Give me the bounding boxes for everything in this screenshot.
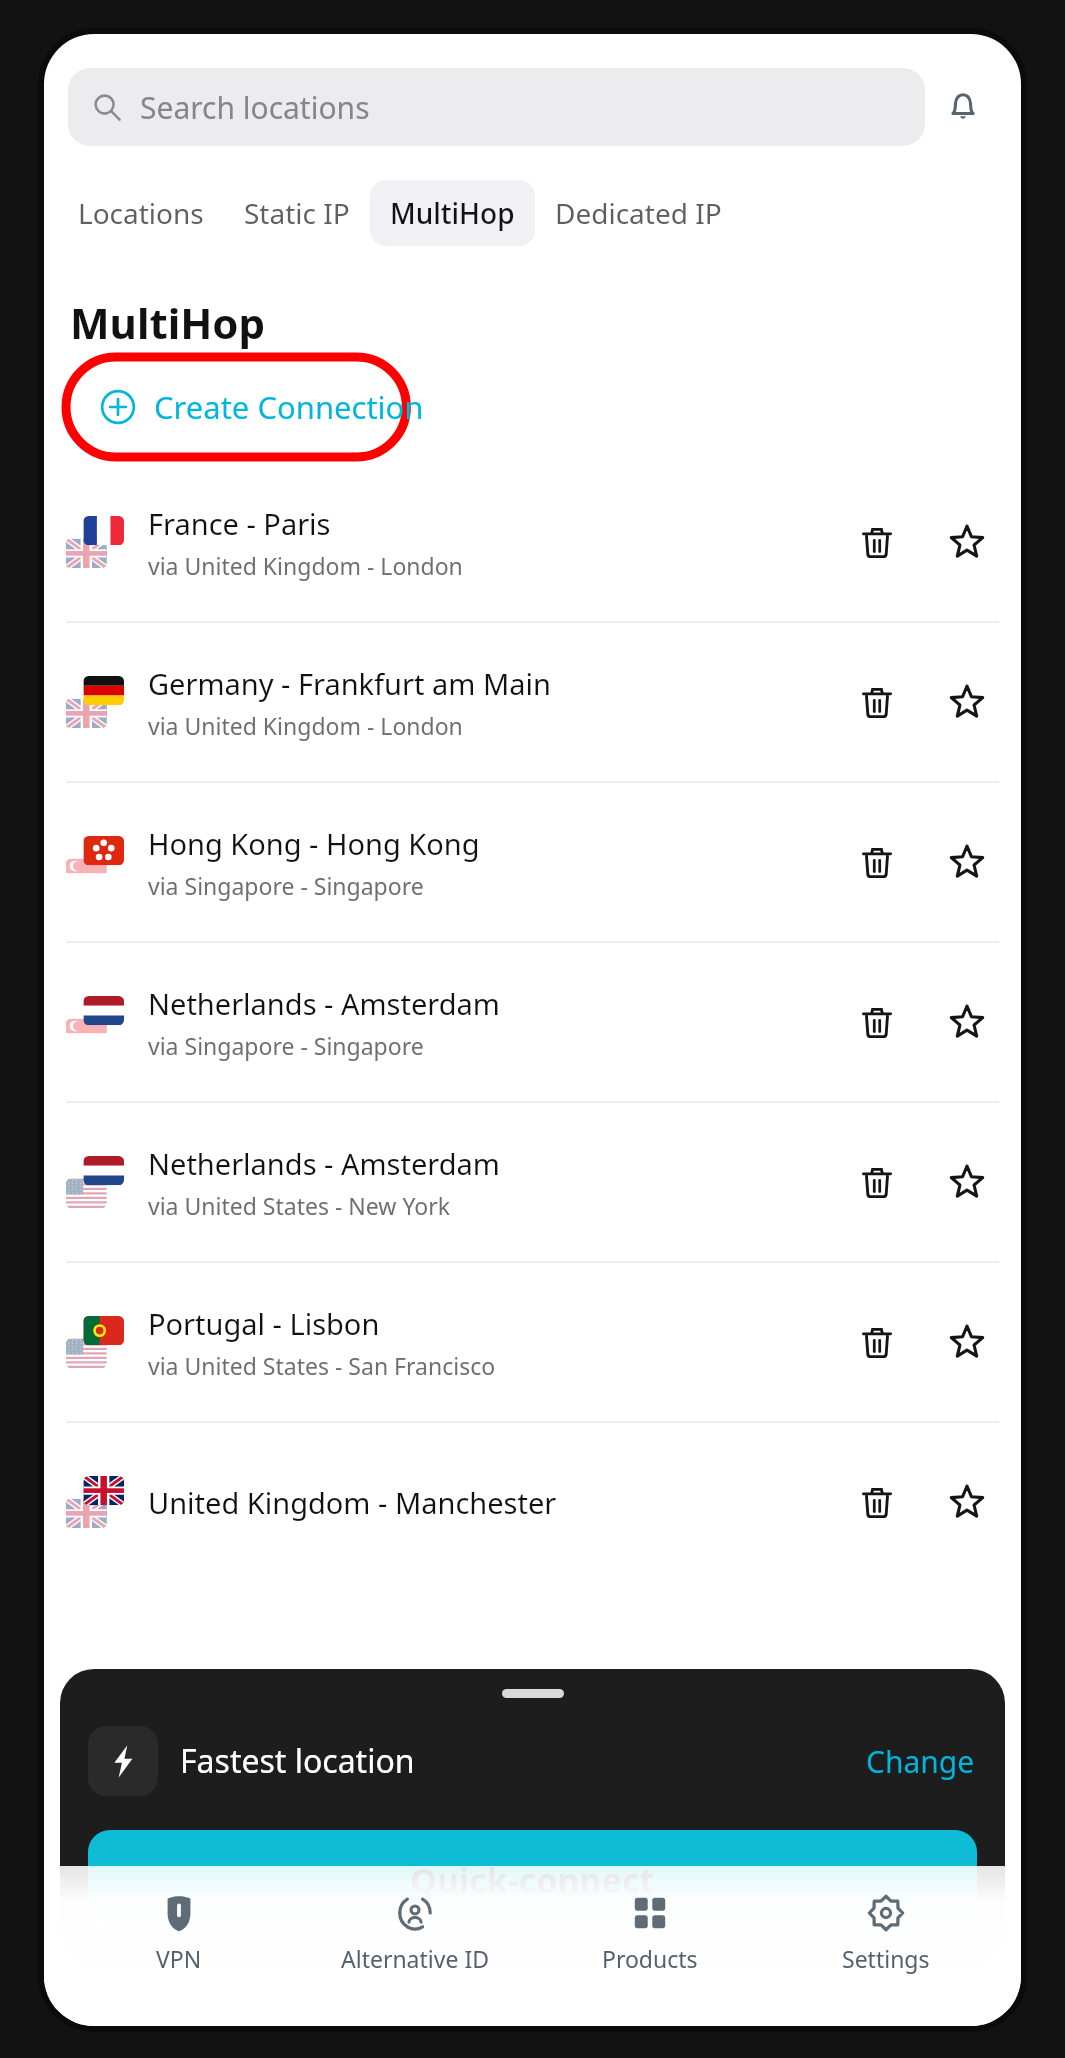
staticText: Netherlands - Amsterdam — [148, 984, 500, 1023]
button[interactable]: Delete — [845, 1310, 909, 1374]
button[interactable]: Create Connection — [100, 351, 424, 463]
button[interactable]: VPN — [79, 1888, 279, 1980]
staticText: Create Connection — [154, 386, 424, 428]
button[interactable]: Notifications — [925, 69, 1001, 145]
button[interactable]: Hong Kong - Hong Kong — [44, 783, 1021, 941]
button[interactable]: Favorite — [935, 1150, 999, 1214]
staticText: Quick-connect — [410, 1857, 655, 1903]
staticText: via United States - New York — [148, 1190, 450, 1221]
button[interactable]: Delete — [845, 510, 909, 574]
staticText: Fastest location — [180, 1739, 866, 1783]
button[interactable]: Delete — [845, 1150, 909, 1214]
staticText: Search locations — [140, 87, 370, 128]
button[interactable]: Favorite — [935, 670, 999, 734]
button[interactable]: Delete — [845, 670, 909, 734]
staticText: Hong Kong - Hong Kong — [148, 824, 480, 863]
staticText: Portugal - Lisbon — [148, 1304, 380, 1343]
staticText: via United Kingdom - London — [148, 710, 463, 741]
staticText: Dedicated IP — [555, 194, 722, 232]
button[interactable]: France - Paris — [44, 463, 1021, 621]
button[interactable]: Delete — [845, 830, 909, 894]
button[interactable]: Delete — [845, 990, 909, 1054]
button[interactable]: Products — [550, 1888, 750, 1980]
staticText: Germany - Frankfurt am Main — [148, 664, 551, 703]
staticText: via Singapore - Singapore — [148, 1030, 424, 1061]
button[interactable]: Favorite — [935, 1310, 999, 1374]
button[interactable]: Fastest location — [88, 1726, 975, 1796]
staticText: United Kingdom - Manchester — [148, 1483, 845, 1522]
button[interactable]: Netherlands - Amsterdam — [44, 943, 1021, 1101]
button[interactable]: Favorite — [935, 830, 999, 894]
staticText: via Singapore - Singapore — [148, 870, 424, 901]
button[interactable]: Dedicated IP — [535, 180, 742, 246]
staticText: Netherlands - Amsterdam — [148, 1144, 500, 1183]
staticText: Static IP — [244, 194, 350, 232]
button[interactable]: Quick-connect — [88, 1830, 977, 1930]
button[interactable]: Change — [866, 1741, 975, 1782]
button[interactable]: Favorite — [935, 990, 999, 1054]
staticText: via United Kingdom - London — [148, 550, 463, 581]
button[interactable]: Netherlands - Amsterdam — [44, 1103, 1021, 1261]
button[interactable]: Portugal - Lisbon — [44, 1263, 1021, 1421]
staticText: Alternative ID — [341, 1943, 489, 1974]
button[interactable]: Settings — [786, 1888, 986, 1980]
button[interactable]: Germany - Frankfurt am Main — [44, 623, 1021, 781]
staticText: Products — [602, 1943, 698, 1974]
button[interactable]: Favorite — [935, 510, 999, 574]
button[interactable]: United Kingdom - Manchester — [44, 1423, 1021, 1581]
button[interactable]: Search locations — [68, 68, 925, 146]
staticText: MultiHop — [390, 194, 515, 232]
staticText: via United States - San Francisco — [148, 1350, 496, 1381]
staticText: VPN — [156, 1943, 202, 1974]
staticText: Locations — [78, 194, 204, 232]
staticText: Settings — [842, 1943, 930, 1974]
button[interactable]: Locations — [58, 180, 224, 246]
button[interactable]: Alternative ID — [315, 1888, 515, 1980]
staticText: MultiHop — [70, 294, 266, 351]
staticText: France - Paris — [148, 504, 331, 543]
button[interactable]: Static IP — [224, 180, 370, 246]
button[interactable]: MultiHop — [370, 180, 535, 246]
